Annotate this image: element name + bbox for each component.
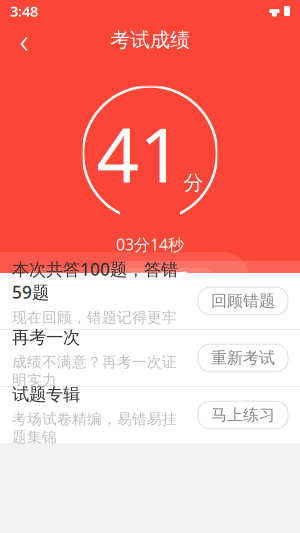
button[interactable]: Back — [4, 22, 44, 58]
staticText: 分 — [183, 170, 203, 195]
staticText: 3:48 — [10, 1, 38, 21]
staticText: 本次共答100题，答错59题 — [12, 257, 178, 303]
staticText: 重新考试 — [211, 348, 275, 368]
staticText: ‹ — [19, 17, 28, 63]
staticText: 03分14秒 — [116, 234, 184, 255]
staticText: 马上练习 — [211, 405, 275, 425]
staticText: 再考一次 — [12, 327, 80, 348]
staticText: 考场试卷精编，易错易挂题集锦 — [12, 410, 177, 446]
staticText: 成绩不满意？再考一次证明实力 — [12, 353, 177, 389]
staticText: 41 — [96, 104, 182, 203]
staticText: 考试成绩 — [110, 28, 190, 52]
staticText: 马路杀手 — [110, 269, 190, 293]
button[interactable]: 再考一次 — [0, 330, 300, 386]
staticText: 现在回顾，错题记得更牢固 — [12, 308, 177, 344]
staticText: 试题专辑 — [12, 384, 80, 405]
button[interactable]: 本次共答100题，答错59题 — [0, 273, 300, 329]
button[interactable]: 试题专辑 — [0, 387, 300, 443]
staticText: 回顾错题 — [211, 291, 275, 311]
